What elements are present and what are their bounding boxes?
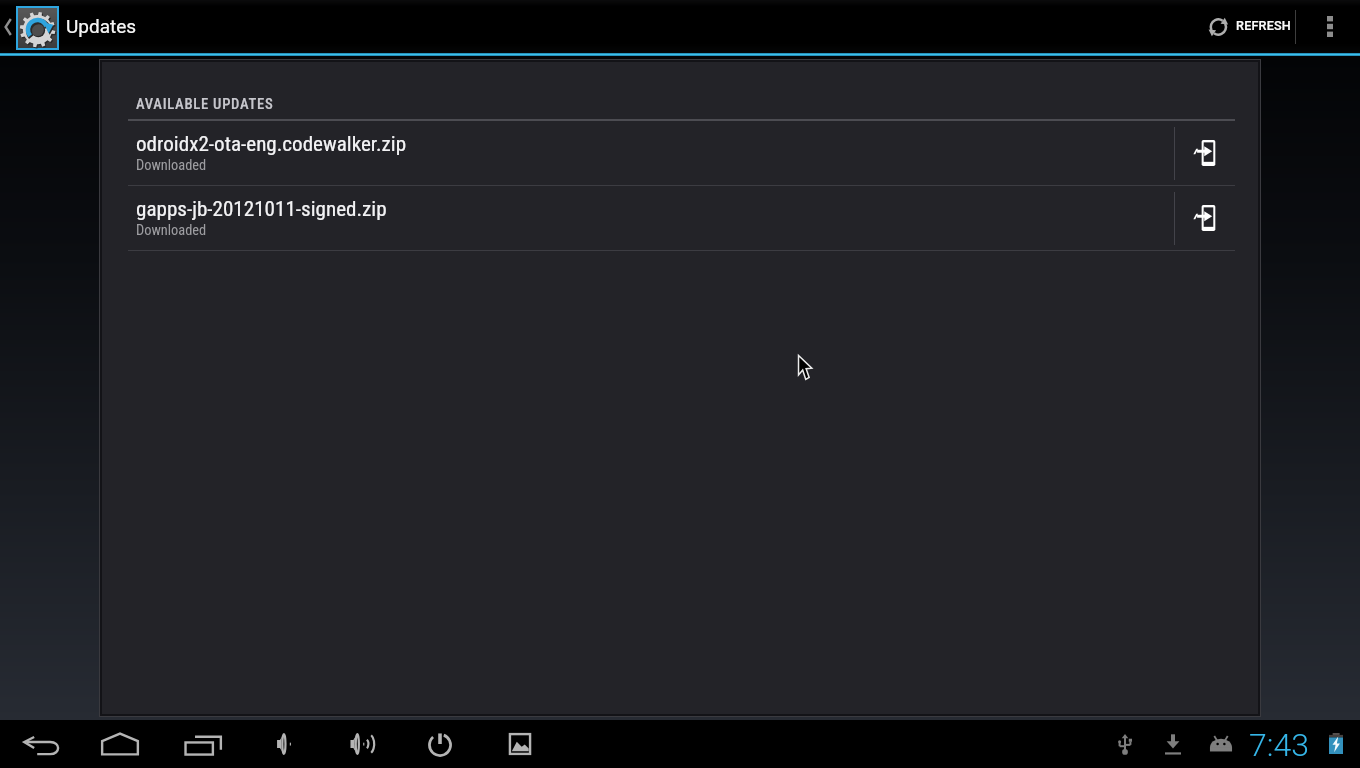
button[interactable]: Back	[21, 720, 61, 768]
staticText: AVAILABLE UPDATES	[136, 95, 274, 112]
button[interactable]: Volume down	[266, 720, 306, 768]
button[interactable]: REFRESH	[1196, 0, 1296, 53]
staticText: Downloaded	[136, 157, 207, 174]
button[interactable]: Power	[420, 720, 460, 768]
button[interactable]: More options	[1308, 0, 1352, 53]
button[interactable]: Screenshot	[500, 720, 540, 768]
staticText: odroidx2-ota-eng.codewalker.zip	[136, 131, 407, 156]
staticText: Downloaded	[136, 222, 207, 239]
button[interactable]: Volume up	[347, 720, 387, 768]
button[interactable]: Install update	[1175, 121, 1235, 185]
staticText: 7:43	[1249, 726, 1309, 764]
button[interactable]: gapps-jb-20121011-signed.zip	[128, 186, 1235, 250]
other: Battery charging	[1329, 733, 1343, 754]
button[interactable]: Recent apps	[183, 720, 223, 768]
staticText: REFRESH	[1236, 18, 1291, 33]
staticText: gapps-jb-20121011-signed.zip	[136, 196, 387, 221]
button[interactable]: Install update	[1175, 186, 1235, 250]
button[interactable]: odroidx2-ota-eng.codewalker.zip	[128, 121, 1235, 185]
button[interactable]: Home	[100, 720, 140, 768]
button[interactable]: Navigate up	[0, 0, 140, 53]
staticText: Updates	[66, 15, 137, 37]
